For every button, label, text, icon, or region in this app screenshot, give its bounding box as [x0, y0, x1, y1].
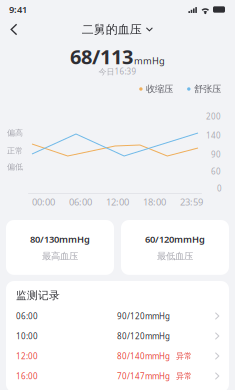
staticText: 收缩压: [146, 83, 173, 95]
staticText: 06:00: [16, 311, 38, 321]
staticText: 正常: [7, 146, 23, 156]
button[interactable]: 12:00: [6, 346, 229, 366]
staticText: 90: [211, 149, 221, 160]
button[interactable]: 16:00: [6, 366, 229, 386]
staticText: 最低血压: [157, 250, 193, 262]
staticText: 80/130mmHg: [30, 233, 90, 245]
staticText: 68/113: [70, 43, 133, 70]
staticText: 10:00: [16, 331, 38, 341]
staticText: 70/147mmHg: [117, 371, 170, 381]
staticText: 18:00: [143, 196, 166, 208]
staticText: 23:59: [180, 196, 203, 208]
staticText: 舒张压: [194, 83, 221, 95]
staticText: 12:00: [16, 351, 38, 361]
button[interactable]: 06:00: [6, 306, 229, 326]
staticText: 90/120mmHg: [117, 311, 170, 321]
staticText: 12:00: [106, 196, 129, 208]
staticText: 9:41: [9, 3, 27, 16]
staticText: 16:00: [16, 371, 38, 381]
staticText: 偏低: [7, 162, 23, 172]
staticText: 0: [217, 183, 222, 194]
staticText: 最高血压: [42, 250, 78, 262]
button[interactable]: 二舅的血压: [82, 22, 153, 37]
staticText: 异常: [176, 351, 192, 361]
staticText: 60: [211, 166, 221, 177]
staticText: 偏高: [7, 128, 23, 138]
staticText: 80/140mmHg: [117, 351, 170, 361]
button[interactable]: 10:00: [6, 326, 229, 346]
staticText: mmHg: [134, 54, 165, 67]
staticText: 异常: [176, 371, 192, 381]
staticText: 二舅的血压: [82, 22, 142, 37]
staticText: 00:00: [32, 196, 55, 208]
staticText: 200: [206, 111, 221, 122]
staticText: 监测记录: [16, 289, 60, 302]
staticText: 60/120mmHg: [145, 233, 205, 245]
staticText: 80/120mmHg: [117, 331, 170, 341]
staticText: 140: [206, 130, 221, 141]
staticText: 06:00: [69, 196, 92, 208]
staticText: 今日16:39: [98, 66, 136, 77]
button[interactable]: Back: [3, 22, 25, 37]
